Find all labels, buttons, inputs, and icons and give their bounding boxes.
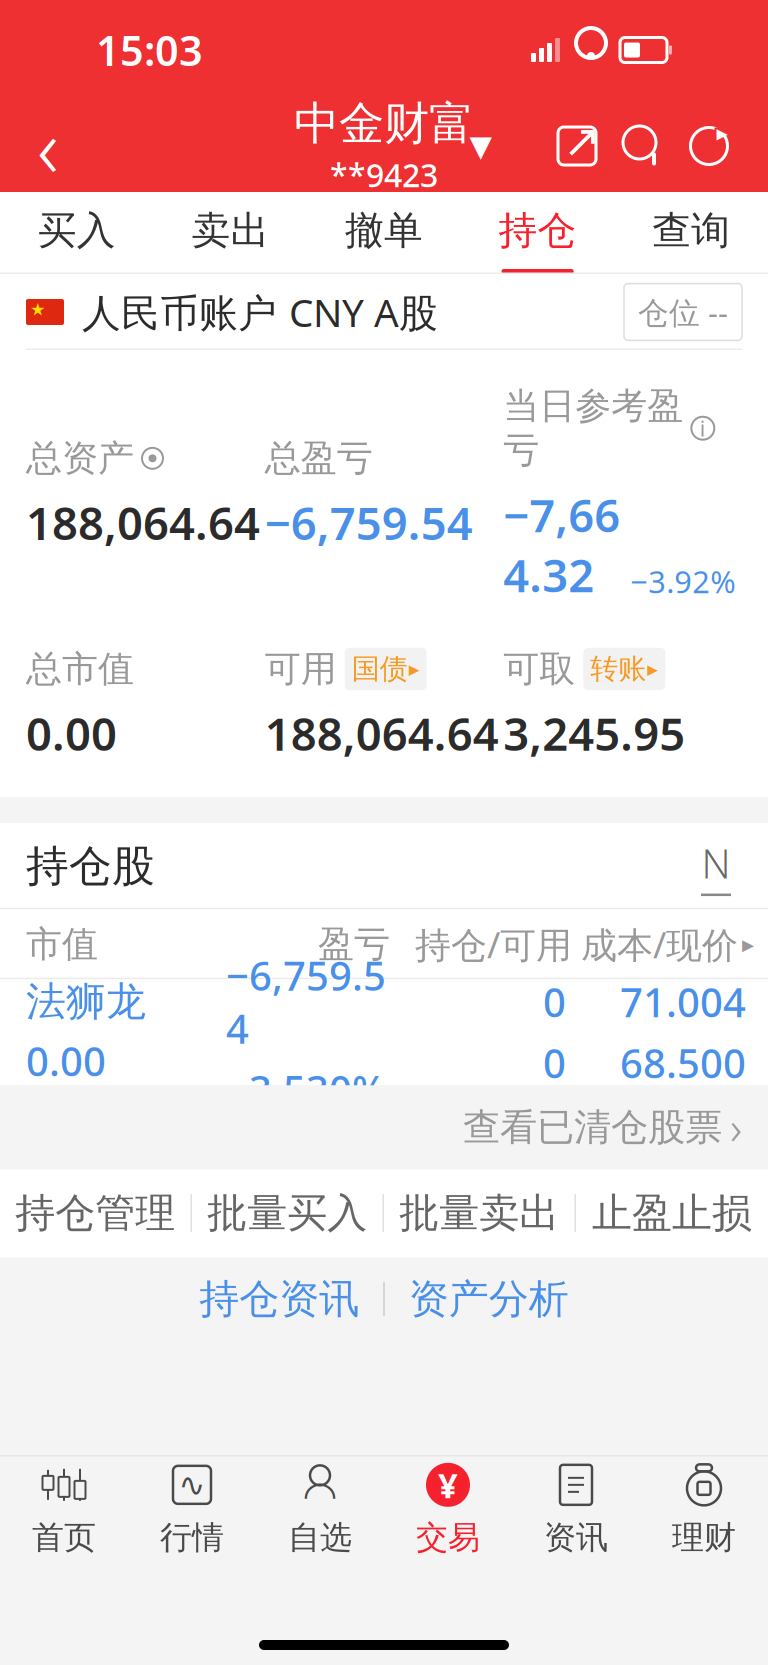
- staticText: 188,064.64: [265, 703, 499, 763]
- button[interactable]: 查看已清仓股票: [0, 1085, 768, 1169]
- staticText: 总资产: [26, 436, 134, 480]
- button[interactable]: 资产分析: [385, 1263, 593, 1336]
- staticText: 批量买入: [207, 1189, 367, 1238]
- staticText: ›: [730, 1097, 742, 1157]
- button[interactable]: 图表: [690, 840, 742, 892]
- staticText: ▸: [409, 657, 420, 681]
- staticText: 可取: [503, 647, 575, 691]
- button[interactable]: 批量买入: [192, 1169, 382, 1257]
- staticText: 71.004: [620, 975, 746, 1028]
- staticText: 撤单: [345, 207, 423, 254]
- button[interactable]: 首页: [0, 1456, 128, 1560]
- staticText: 持仓: [499, 207, 577, 254]
- button[interactable]: 法狮龙: [0, 979, 768, 1085]
- staticText: 188,064.64: [26, 492, 260, 553]
- staticText: 总市值: [26, 647, 134, 691]
- button[interactable]: 批量卖出: [384, 1169, 574, 1257]
- staticText: 理财: [672, 1518, 736, 1557]
- staticText: 查看已清仓股票: [463, 1104, 722, 1150]
- staticText: ▸: [742, 931, 754, 958]
- staticText: 买入: [38, 207, 116, 254]
- staticText: ▼: [469, 129, 492, 163]
- staticText: 国债: [352, 652, 408, 686]
- staticText: 自选: [288, 1518, 352, 1557]
- button[interactable]: 分享: [544, 100, 610, 192]
- button[interactable]: ¥: [384, 1456, 512, 1560]
- button[interactable]: 买入: [0, 192, 154, 274]
- staticText: 0: [543, 975, 566, 1028]
- staticText: 总盈亏: [265, 436, 373, 480]
- staticText: 交易: [416, 1518, 480, 1557]
- button[interactable]: 止盈止损: [576, 1169, 768, 1257]
- button[interactable]: 理财: [640, 1456, 768, 1560]
- staticText: −3.92%: [630, 561, 735, 602]
- staticText: 首页: [32, 1518, 96, 1557]
- button[interactable]: 返回: [0, 100, 96, 192]
- staticText: 3,245.95: [503, 703, 685, 763]
- staticText: 0: [543, 1036, 566, 1089]
- staticText: ‹: [37, 91, 59, 201]
- staticText: 持仓管理: [15, 1189, 175, 1238]
- button[interactable]: 持仓资讯: [175, 1263, 383, 1336]
- staticText: 查询: [652, 207, 730, 254]
- button[interactable]: 搜索: [610, 100, 676, 192]
- button[interactable]: 持仓管理: [0, 1169, 190, 1257]
- staticText: ◠: [302, 1473, 337, 1518]
- staticText: ▸: [647, 657, 658, 681]
- staticText: **9423: [330, 154, 438, 196]
- staticText: Ν: [701, 836, 730, 889]
- staticText: ★: [30, 300, 46, 319]
- button[interactable]: 持仓: [461, 192, 614, 274]
- staticText: 可用: [265, 647, 337, 691]
- staticText: 中金财富: [294, 96, 474, 152]
- button[interactable]: ◠: [256, 1456, 384, 1560]
- staticText: 卖出: [191, 207, 269, 254]
- button[interactable]: 刷新: [676, 100, 742, 192]
- staticText: −7,664.32: [503, 484, 620, 605]
- staticText: ▸: [716, 120, 727, 146]
- staticText: −6,759.54: [226, 949, 386, 1055]
- staticText: 法狮龙: [26, 977, 146, 1026]
- staticText: 市值: [26, 922, 98, 966]
- staticText: 仓位 --: [638, 292, 728, 332]
- button[interactable]: 查询: [614, 192, 768, 274]
- button[interactable]: ∿: [128, 1456, 256, 1560]
- button[interactable]: 资讯: [512, 1456, 640, 1560]
- button[interactable]: 撤单: [307, 192, 461, 274]
- button[interactable]: 仓位 --: [624, 284, 742, 340]
- button[interactable]: 切换账户: [452, 100, 510, 192]
- staticText: 15:03: [96, 23, 203, 77]
- staticText: 当日参考盈亏: [503, 384, 683, 472]
- staticText: ↗: [563, 115, 601, 167]
- staticText: −3.530%: [226, 1063, 386, 1116]
- staticText: 资讯: [544, 1518, 608, 1557]
- staticText: 成本/现价: [581, 920, 738, 968]
- staticText: ¥: [438, 1462, 458, 1508]
- staticText: 0.00: [26, 703, 117, 763]
- staticText: 持仓资讯: [199, 1275, 359, 1324]
- staticText: ∿: [178, 1467, 205, 1503]
- staticText: 持仓股: [26, 840, 155, 892]
- button[interactable]: 卖出: [154, 192, 307, 274]
- button[interactable]: 转账: [583, 648, 665, 690]
- staticText: 人民币账户 CNY A股: [82, 286, 438, 338]
- staticText: 盈亏: [318, 922, 390, 966]
- staticText: −6,759.54: [265, 492, 473, 553]
- staticText: 0.00: [26, 1034, 106, 1087]
- staticText: 止盈止损: [592, 1189, 752, 1238]
- staticText: i: [700, 414, 706, 442]
- staticText: 68.500: [620, 1036, 746, 1089]
- staticText: 持仓/可用: [415, 920, 572, 968]
- button[interactable]: 国债: [345, 648, 427, 690]
- staticText: 资产分析: [409, 1275, 569, 1324]
- staticText: 批量卖出: [399, 1189, 559, 1238]
- staticText: 行情: [160, 1518, 224, 1557]
- staticText: 转账: [590, 652, 646, 686]
